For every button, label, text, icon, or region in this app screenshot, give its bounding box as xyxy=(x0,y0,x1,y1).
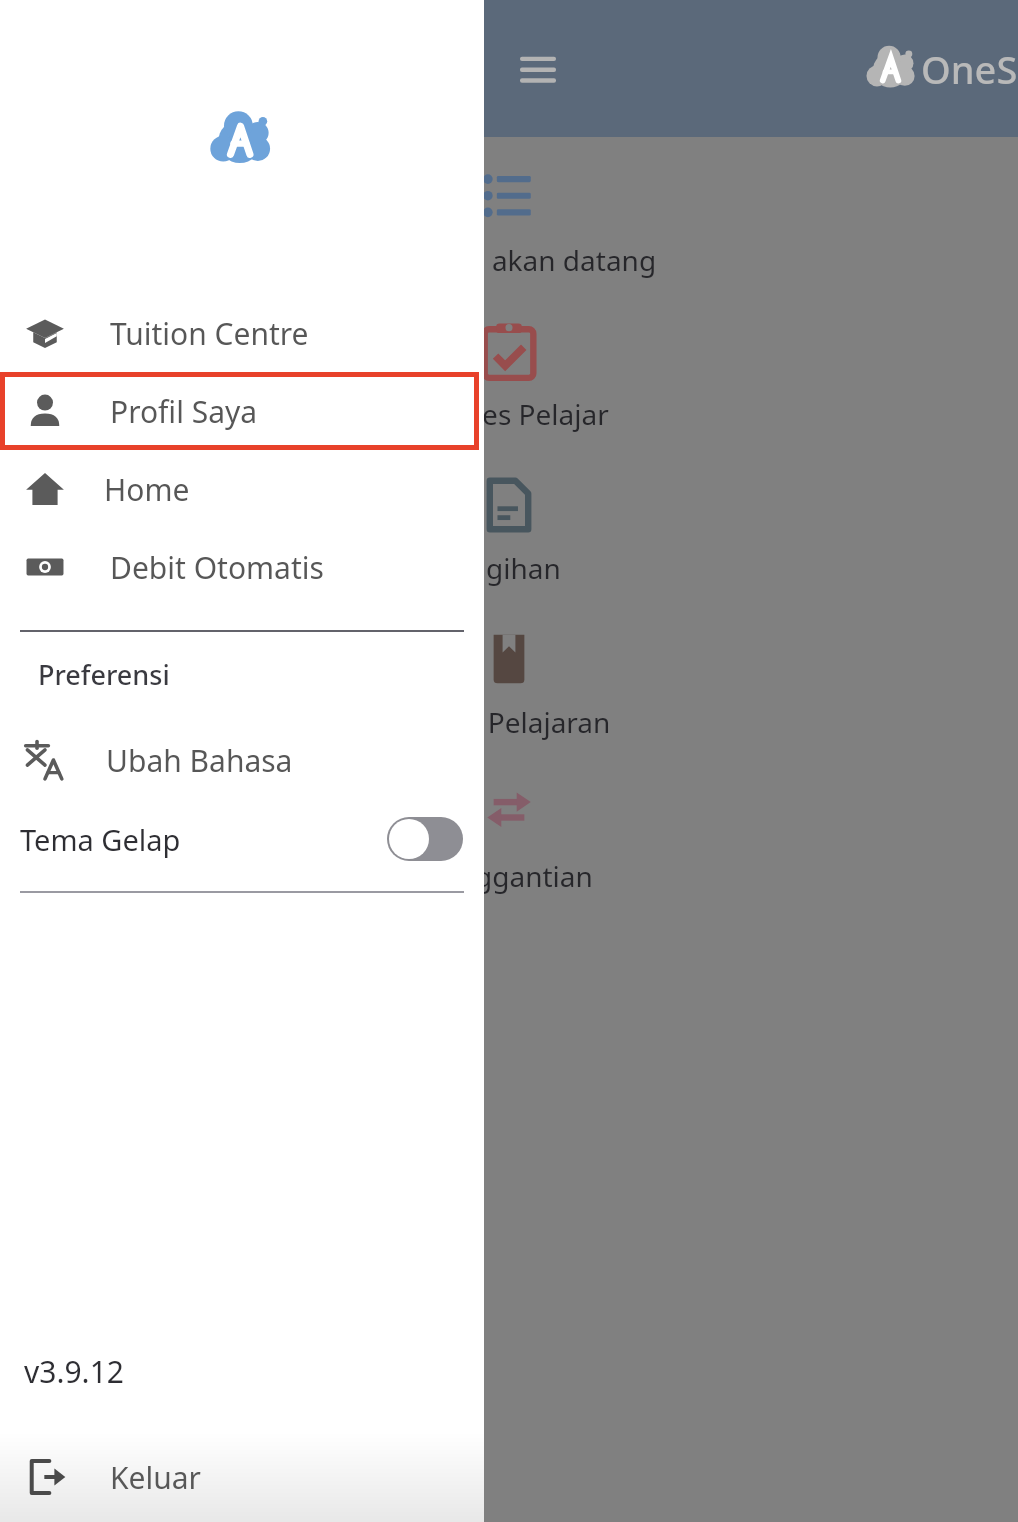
staticText: Progres Pelajar xyxy=(409,395,609,433)
staticText: Keluar xyxy=(110,1457,201,1498)
staticText: Penggantian xyxy=(425,857,593,895)
staticText: v3.9.12 xyxy=(24,1351,124,1392)
button[interactable]: Ubah Bahasa xyxy=(0,721,484,799)
button[interactable]: Profil Saya xyxy=(0,372,484,450)
staticText: Pelajaran akan datang xyxy=(362,241,657,279)
staticText: Ubah Bahasa xyxy=(106,740,293,781)
button[interactable]: Tema Gelap xyxy=(0,799,484,879)
staticText: Tema Gelap xyxy=(20,820,181,859)
staticText: OneS xyxy=(921,43,1018,95)
button[interactable]: Saldo Pelajaran xyxy=(0,627,1018,741)
button[interactable]: Penggantian xyxy=(0,781,1018,895)
staticText: Home xyxy=(104,469,190,510)
button[interactable]: Tuition Centre xyxy=(0,294,484,372)
button[interactable]: Pelajaran akan datang xyxy=(0,165,1018,279)
button[interactable]: Open navigation menu xyxy=(498,29,578,109)
button[interactable]: Debit Otomatis xyxy=(0,528,484,606)
staticText: Preferensi xyxy=(38,656,170,693)
button[interactable]: Keluar xyxy=(0,1432,484,1522)
button[interactable]: Tagihan xyxy=(0,473,1018,587)
staticText: Saldo Pelajaran xyxy=(408,703,611,741)
button[interactable]: Progres Pelajar xyxy=(0,319,1018,433)
staticText: Profil Saya xyxy=(110,391,258,432)
staticText: Tuition Centre xyxy=(110,313,309,354)
staticText: Tagihan xyxy=(457,549,561,587)
button[interactable]: Home xyxy=(0,450,484,528)
staticText: Debit Otomatis xyxy=(110,547,324,588)
